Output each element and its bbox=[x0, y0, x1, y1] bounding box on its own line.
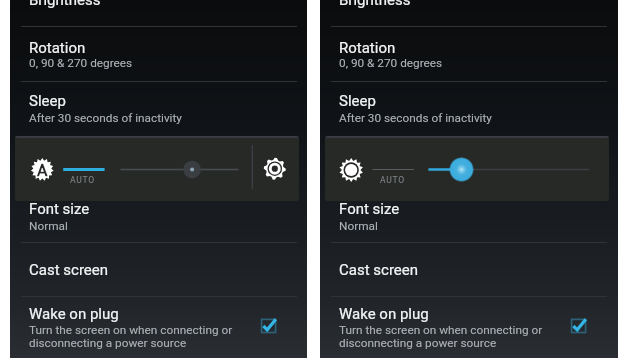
staticText: Turn the screen on when connecting or bbox=[29, 323, 233, 337]
staticText: Brightness bbox=[339, 0, 411, 9]
button[interactable] bbox=[10, 81, 307, 136]
staticText: Sleep bbox=[339, 92, 376, 110]
staticText: 0, 90 & 270 degrees bbox=[29, 56, 133, 70]
button[interactable] bbox=[10, 26, 307, 81]
staticText: Cast screen bbox=[29, 261, 109, 279]
staticText: disconnecting a power source bbox=[29, 336, 187, 350]
staticText: AUTO bbox=[70, 175, 96, 185]
staticText: disconnecting a power source bbox=[339, 336, 497, 350]
staticText: Normal bbox=[29, 219, 68, 233]
staticText: Normal bbox=[339, 219, 378, 233]
staticText: 0, 90 & 270 degrees bbox=[339, 56, 443, 70]
staticText: Rotation bbox=[29, 39, 86, 57]
staticText: After 30 seconds of inactivity bbox=[29, 111, 182, 125]
staticText: Rotation bbox=[339, 39, 396, 57]
staticText: Wake on plug bbox=[29, 305, 119, 323]
button[interactable] bbox=[320, 242, 618, 296]
button[interactable] bbox=[320, 0, 618, 26]
button[interactable]: Auto brightness bbox=[27, 136, 59, 201]
staticText: After 30 seconds of inactivity bbox=[339, 111, 492, 125]
staticText: Brightness bbox=[29, 0, 101, 9]
staticText: Sleep bbox=[29, 92, 66, 110]
staticText: Font size bbox=[29, 200, 90, 218]
staticText: Font size bbox=[339, 200, 400, 218]
button[interactable] bbox=[10, 0, 307, 26]
staticText: Turn the screen on when connecting or bbox=[339, 323, 543, 337]
button[interactable]: Wake on plug bbox=[259, 316, 279, 336]
button[interactable]: Auto brightness bbox=[337, 136, 369, 201]
button[interactable] bbox=[320, 296, 618, 358]
button[interactable] bbox=[10, 296, 307, 358]
button[interactable]: Wake on plug bbox=[569, 316, 589, 336]
staticText: AUTO bbox=[380, 175, 406, 185]
button[interactable]: Brightness settings bbox=[255, 136, 295, 201]
button[interactable] bbox=[10, 242, 307, 296]
staticText: Cast screen bbox=[339, 261, 419, 279]
staticText: Wake on plug bbox=[339, 305, 429, 323]
staticText: A bbox=[37, 161, 48, 180]
button[interactable] bbox=[320, 81, 618, 136]
button[interactable] bbox=[320, 26, 618, 81]
